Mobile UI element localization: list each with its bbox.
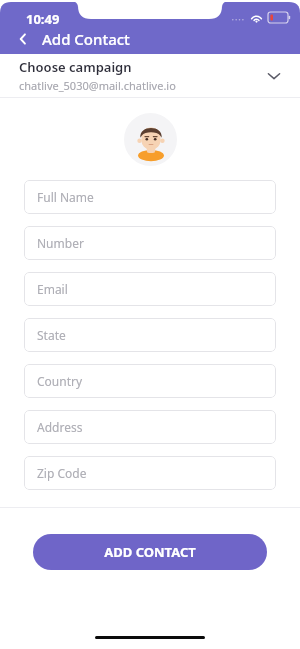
staticText: Email [37,281,68,297]
staticText: 10:49 [26,10,60,28]
staticText: State [37,327,66,343]
button[interactable]: Choose campaign [0,54,300,97]
button[interactable]: ADD CONTACT [33,534,267,570]
staticText: Address [37,419,83,435]
button[interactable]: Address [24,410,276,444]
staticText: Full Name [37,189,94,205]
button[interactable]: Back [10,26,36,52]
button[interactable]: Number [24,226,276,260]
staticText: Zip Code [37,465,87,481]
staticText: Choose campaign [19,58,132,76]
button[interactable]: Full Name [24,180,276,214]
staticText: Country [37,373,83,389]
button[interactable]: Contact photo [124,113,177,166]
staticText: chatlive_5030@mail.chatlive.io [19,78,176,93]
staticText: Add Contact [42,29,130,49]
button[interactable]: State [24,318,276,352]
button[interactable]: Email [24,272,276,306]
button[interactable]: Country [24,364,276,398]
button[interactable]: Zip Code [24,456,276,490]
staticText: Number [37,235,84,251]
staticText: ADD CONTACT [104,543,196,561]
